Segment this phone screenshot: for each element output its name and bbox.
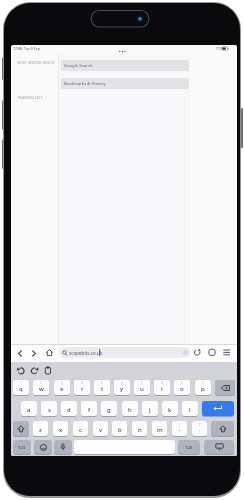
- staticText: x: [59, 426, 63, 434]
- staticText: !: [179, 422, 180, 427]
- button[interactable]: z: [33, 421, 48, 436]
- staticText: w: [39, 385, 44, 393]
- staticText: 71%: [216, 46, 223, 51]
- button[interactable]: [30, 349, 38, 358]
- staticText: ·: [100, 422, 101, 426]
- staticText: 3: [61, 381, 63, 385]
- button[interactable]: i: [154, 380, 170, 395]
- staticText: ·: [190, 402, 191, 406]
- button[interactable]: u: [134, 380, 150, 395]
- staticText: ·: [139, 422, 140, 426]
- button[interactable]: [54, 440, 72, 454]
- button[interactable]: [45, 348, 54, 358]
- staticText: ·: [29, 402, 30, 406]
- staticText: scopebits.co.uk: [69, 350, 103, 356]
- staticText: o: [180, 385, 184, 393]
- staticText: ?: [199, 422, 201, 427]
- staticText: 6: [121, 381, 123, 385]
- staticText: ·: [60, 422, 61, 426]
- button[interactable]: [16, 349, 24, 358]
- button[interactable]: k: [162, 401, 178, 416]
- button[interactable]: x: [53, 421, 68, 436]
- button[interactable]: scopebits.co.uk: [59, 347, 190, 358]
- staticText: 0: [202, 381, 204, 385]
- staticText: i: [161, 385, 163, 393]
- button[interactable]: e: [54, 380, 70, 395]
- staticText: m: [157, 426, 163, 434]
- button[interactable]: Google Search: [61, 60, 189, 71]
- staticText: Tue 9 Sep: [24, 46, 40, 51]
- button[interactable]: s: [41, 401, 57, 416]
- button[interactable]: a: [21, 401, 37, 416]
- button[interactable]: [193, 348, 202, 357]
- staticText: j: [149, 406, 151, 414]
- staticText: ·: [49, 402, 50, 406]
- staticText: p: [201, 385, 205, 393]
- staticText: z: [39, 426, 42, 434]
- button[interactable]: r: [74, 380, 90, 395]
- staticText: b: [118, 426, 122, 434]
- button[interactable]: .: [192, 421, 207, 436]
- staticText: 1: [20, 381, 22, 385]
- staticText: g: [107, 406, 111, 414]
- staticText: .: [199, 426, 201, 433]
- button[interactable]: d: [61, 401, 77, 416]
- staticText: ·: [170, 402, 171, 406]
- staticText: ·: [40, 422, 41, 426]
- staticText: ·: [80, 422, 81, 426]
- button[interactable]: [211, 421, 234, 436]
- button[interactable]: f: [81, 401, 97, 416]
- staticText: 8: [161, 381, 163, 385]
- staticText: n: [138, 426, 142, 434]
- staticText: 9: [181, 381, 183, 385]
- button[interactable]: [202, 401, 234, 416]
- button[interactable]: c: [73, 421, 88, 436]
- button[interactable]: [208, 348, 216, 357]
- button[interactable]: [13, 421, 29, 436]
- staticText: ·: [159, 422, 160, 426]
- staticText: s: [48, 406, 51, 414]
- button[interactable]: v: [93, 421, 108, 436]
- staticText: d: [67, 406, 71, 414]
- staticText: 4: [81, 381, 83, 385]
- button[interactable]: j: [142, 401, 158, 416]
- button[interactable]: Bookmarks & History: [61, 78, 189, 89]
- button[interactable]: q: [13, 380, 29, 395]
- staticText: ·: [150, 402, 151, 406]
- button[interactable]: t: [94, 380, 110, 395]
- button[interactable]: [223, 348, 231, 357]
- staticText: 123: [185, 445, 193, 451]
- staticText: h: [128, 406, 132, 414]
- staticText: l: [189, 406, 191, 414]
- button[interactable]: l: [182, 401, 198, 416]
- button[interactable]: ,: [172, 421, 187, 436]
- button[interactable]: o: [174, 380, 190, 395]
- staticText: t: [101, 385, 104, 393]
- staticText: y: [120, 385, 124, 393]
- staticText: k: [168, 406, 172, 414]
- staticText: 5: [101, 381, 103, 385]
- staticText: READING LIST: [18, 95, 43, 100]
- button[interactable]: p: [195, 380, 211, 395]
- button[interactable]: 123: [13, 440, 31, 454]
- staticText: c: [79, 426, 82, 434]
- staticText: r: [81, 385, 84, 393]
- button[interactable]: n: [132, 421, 147, 436]
- staticText: 17:06: [13, 46, 22, 51]
- button[interactable]: 123: [178, 440, 200, 454]
- button[interactable]: y: [114, 380, 130, 395]
- button[interactable]: [204, 440, 234, 454]
- staticText: Bookmarks & History: [64, 81, 106, 87]
- button[interactable]: g: [101, 401, 117, 416]
- staticText: ·: [89, 402, 90, 406]
- button[interactable]: b: [112, 421, 127, 436]
- staticText: f: [88, 406, 91, 414]
- staticText: 7: [141, 381, 143, 385]
- staticText: v: [99, 426, 103, 434]
- button[interactable]: [74, 440, 175, 454]
- button[interactable]: [34, 440, 52, 454]
- button[interactable]: [215, 380, 235, 395]
- button[interactable]: h: [122, 401, 138, 416]
- button[interactable]: w: [33, 380, 49, 395]
- button[interactable]: m: [152, 421, 167, 436]
